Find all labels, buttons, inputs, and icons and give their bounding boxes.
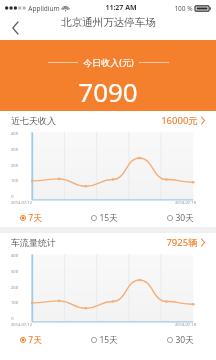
staticText: 11:27 AM bbox=[105, 3, 137, 13]
staticText: 北京通州万达停车场 bbox=[61, 16, 156, 29]
staticText: 300 bbox=[11, 269, 18, 274]
staticText: 车流量统计 bbox=[11, 237, 56, 248]
staticText: 0 bbox=[11, 194, 14, 199]
staticText: 400 bbox=[11, 253, 18, 258]
button[interactable]: 30天 bbox=[165, 332, 196, 348]
staticText: 近七天收入 bbox=[11, 115, 56, 126]
staticText: 7090 bbox=[78, 74, 138, 109]
staticText: 7925辆 bbox=[166, 236, 198, 249]
staticText: 7天 bbox=[28, 334, 42, 346]
button[interactable]: 近七天收入 bbox=[0, 111, 216, 130]
staticText: 2014-07-12 bbox=[11, 322, 32, 327]
staticText: 200 bbox=[11, 163, 18, 168]
staticText: 200 bbox=[11, 285, 18, 290]
staticText: 2014-07-12 bbox=[11, 200, 32, 205]
button[interactable]: 7天 bbox=[18, 332, 44, 348]
staticText: 400 bbox=[11, 131, 18, 136]
button[interactable]: 30天 bbox=[165, 210, 196, 226]
button[interactable]: 15天 bbox=[89, 210, 120, 226]
staticText: 16000元 bbox=[161, 114, 198, 127]
button[interactable]: Back bbox=[0, 16, 30, 40]
staticText: 300 bbox=[11, 147, 18, 152]
staticText: Applidium bbox=[28, 4, 60, 13]
staticText: 100 bbox=[11, 300, 18, 305]
staticText: 0 bbox=[11, 316, 14, 321]
staticText: 100 bbox=[11, 178, 18, 183]
staticText: 30天 bbox=[175, 212, 194, 224]
button[interactable]: 车流量统计 bbox=[0, 233, 216, 252]
staticText: 今日收入(元) bbox=[83, 56, 134, 68]
staticText: 2014-07-18 bbox=[175, 200, 196, 205]
staticText: 15天 bbox=[99, 212, 118, 224]
staticText: 30天 bbox=[175, 334, 194, 346]
staticText: 2014-07-18 bbox=[175, 322, 196, 327]
staticText: 7天 bbox=[28, 212, 42, 224]
staticText: 15天 bbox=[99, 334, 118, 346]
staticText: 100 % bbox=[174, 4, 193, 13]
button[interactable]: 15天 bbox=[89, 332, 120, 348]
button[interactable]: 7天 bbox=[18, 210, 44, 226]
